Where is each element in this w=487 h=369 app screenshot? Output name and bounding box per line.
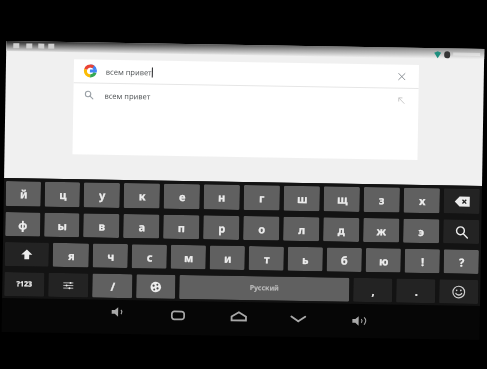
button[interactable]: н [204, 184, 240, 210]
staticText: р [218, 221, 225, 236]
staticText: ы [57, 218, 67, 233]
button[interactable]: ч [93, 243, 128, 268]
staticText: п [177, 220, 185, 235]
staticText: й [20, 186, 28, 201]
button[interactable]: м [171, 245, 206, 269]
staticText: э [418, 224, 424, 239]
button[interactable]: щ [324, 186, 360, 212]
staticText: и [224, 251, 232, 266]
staticText: н [218, 190, 226, 205]
button[interactable]: э [403, 219, 439, 243]
staticText: а [138, 219, 145, 234]
button[interactable]: Backspace [443, 188, 480, 214]
button[interactable]: . [396, 278, 435, 303]
button[interactable]: ? [444, 249, 479, 274]
staticText: г [259, 190, 265, 205]
button[interactable]: з [364, 187, 400, 213]
button[interactable]: и [210, 245, 245, 270]
button[interactable]: у [84, 182, 120, 208]
button[interactable]: Keyboard settings [48, 273, 88, 297]
button[interactable]: Volume down [104, 298, 132, 326]
button[interactable]: Home [225, 302, 253, 330]
staticText: ч [107, 249, 115, 264]
button[interactable]: Tab 2 [26, 43, 32, 48]
staticText: в [98, 219, 105, 234]
button[interactable]: я [53, 243, 89, 267]
button[interactable]: в [83, 213, 119, 238]
button[interactable]: г [244, 185, 280, 211]
staticText: всем привет [106, 67, 152, 77]
button[interactable]: Change language [136, 274, 175, 299]
staticText: х [419, 193, 426, 208]
staticText: Русский [249, 283, 279, 294]
staticText: е [179, 189, 186, 204]
button[interactable]: т [249, 246, 284, 271]
button[interactable]: Volume up [344, 307, 373, 335]
button[interactable]: , [353, 278, 392, 302]
button[interactable]: с [132, 244, 167, 269]
button[interactable]: всем привет [73, 83, 419, 112]
staticText: ф [18, 217, 27, 232]
button[interactable]: ц [45, 182, 80, 207]
button[interactable]: всем привет [74, 59, 419, 88]
button[interactable]: х [404, 188, 440, 213]
button[interactable]: д [323, 217, 359, 242]
button[interactable]: ! [405, 249, 440, 273]
staticText: к [139, 188, 146, 203]
button[interactable]: о [243, 216, 279, 241]
button[interactable]: л [283, 217, 319, 241]
button[interactable]: б [327, 247, 362, 272]
button[interactable]: Emoji [439, 279, 478, 304]
button[interactable]: Hide keyboard [283, 305, 312, 333]
staticText: , [371, 283, 375, 298]
button[interactable]: ф [5, 212, 40, 237]
button[interactable]: Profile [444, 51, 450, 58]
staticText: м [184, 250, 194, 265]
staticText: л [298, 222, 305, 237]
staticText: д [337, 223, 345, 238]
button[interactable]: Search [443, 219, 479, 244]
staticText: / [110, 279, 115, 294]
staticText: б [341, 253, 348, 268]
button[interactable]: е [164, 184, 200, 209]
staticText: . [414, 284, 418, 299]
staticText: ? [459, 255, 465, 270]
staticText: з [379, 192, 385, 207]
button[interactable]: ю [366, 248, 401, 273]
button[interactable]: а [123, 214, 159, 239]
button[interactable]: Tab 1 [13, 43, 19, 48]
staticText: у [99, 188, 106, 203]
button[interactable]: Insert suggestion [390, 89, 413, 112]
staticText: ж [376, 223, 386, 238]
button[interactable]: п [163, 215, 199, 239]
button[interactable]: Tab 3 [38, 44, 44, 49]
button[interactable]: Tab 4 [48, 44, 54, 49]
staticText: ь [302, 252, 309, 267]
staticText: ?123 [16, 279, 32, 289]
button[interactable]: Clear query [391, 65, 413, 88]
staticText: всем привет [104, 91, 151, 101]
button[interactable]: р [203, 215, 239, 240]
button[interactable]: ш [284, 186, 320, 211]
button[interactable]: ы [44, 213, 79, 237]
staticText: я [68, 248, 75, 263]
button[interactable]: / [92, 273, 132, 298]
button[interactable]: к [124, 183, 160, 209]
button[interactable]: й [6, 181, 41, 207]
staticText: т [264, 251, 270, 266]
button[interactable]: Recent apps [165, 301, 193, 329]
staticText: о [258, 221, 265, 236]
button[interactable]: ж [363, 218, 399, 243]
staticText: ц [59, 187, 67, 202]
button[interactable]: ?123 [4, 272, 44, 297]
staticText: ш [297, 191, 308, 206]
button[interactable]: ь [288, 247, 323, 271]
staticText: щ [337, 191, 348, 207]
staticText: ! [421, 254, 425, 269]
button[interactable]: Security [434, 51, 441, 58]
staticText: ю [379, 253, 389, 268]
button[interactable]: Shift [5, 242, 49, 267]
staticText: с [147, 249, 153, 264]
button[interactable]: Русский [179, 275, 349, 302]
